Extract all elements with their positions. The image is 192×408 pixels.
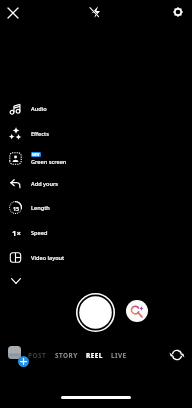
button[interactable]: POST — [27, 351, 48, 360]
staticText: Audio — [31, 105, 47, 113]
button[interactable]: Settings — [168, 2, 188, 22]
button[interactable]: Close — [3, 3, 23, 23]
staticText: STORY — [55, 351, 78, 360]
button[interactable]: REEL — [85, 351, 104, 360]
staticText: Effects — [31, 130, 49, 138]
button[interactable]: Effects — [0, 121, 96, 146]
staticText: NEW — [32, 153, 40, 157]
button[interactable]: STORY — [54, 351, 79, 360]
staticText: 15 — [13, 205, 20, 212]
staticText: Green screen — [31, 158, 67, 166]
button[interactable]: Speed — [0, 220, 96, 245]
button[interactable]: Green screen — [0, 146, 96, 171]
staticText: LIVE — [111, 351, 127, 360]
staticText: Length — [31, 204, 50, 212]
staticText: Video layout — [31, 254, 65, 262]
button[interactable]: Flip camera — [166, 344, 187, 365]
button[interactable]: Gallery — [8, 346, 29, 367]
staticText: REEL — [86, 351, 103, 360]
button[interactable]: Record — [76, 293, 115, 332]
button[interactable]: More options — [7, 272, 25, 290]
button[interactable]: Video layout — [0, 245, 96, 270]
button[interactable]: Length — [0, 195, 96, 220]
staticText: 1× — [12, 228, 21, 239]
button[interactable]: Add yours — [0, 171, 96, 196]
button[interactable]: Meta AI — [126, 300, 148, 322]
staticText: Speed — [31, 229, 48, 237]
staticText: Add yours — [31, 180, 59, 188]
staticText: POST — [28, 351, 47, 360]
button[interactable]: Audio — [0, 96, 96, 121]
button[interactable]: Flash off — [84, 2, 104, 22]
button[interactable]: LIVE — [110, 351, 128, 360]
